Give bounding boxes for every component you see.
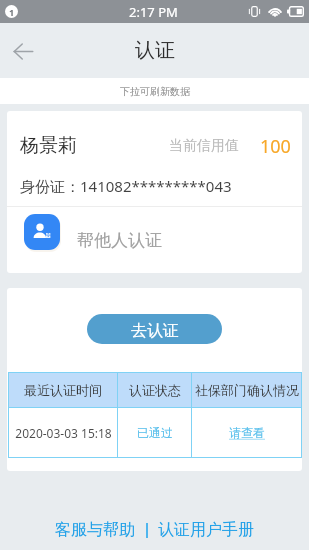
staticText: 身份证：141082*********043 <box>20 176 232 196</box>
button[interactable]: 去认证 <box>87 314 222 344</box>
staticText: 已通过 <box>137 425 173 440</box>
staticText: 2020-03-03 15:18 <box>15 425 112 441</box>
staticText: 请查看 <box>229 425 265 440</box>
staticText: 最近认证时间 <box>24 382 102 398</box>
staticText: 100 <box>260 134 291 159</box>
staticText: 社保部门确认情况 <box>195 382 299 398</box>
staticText: 当前信用值 <box>169 137 239 155</box>
button[interactable]: 帮他人认证 <box>7 207 302 273</box>
button[interactable]: Back <box>0 28 46 74</box>
button[interactable]: 客服与帮助 <box>55 520 135 540</box>
staticText: 杨景莉 <box>20 134 77 158</box>
staticText: 2:17 PM <box>129 3 178 21</box>
staticText: 帮他人认证 <box>77 230 162 251</box>
staticText: 去认证 <box>131 321 179 341</box>
staticText: 1 <box>9 6 15 18</box>
staticText: 下拉可刷新数据 <box>120 85 190 98</box>
staticText: 认证 <box>135 38 175 63</box>
button[interactable]: 认证用户手册 <box>158 520 254 540</box>
staticText: 认证状态 <box>129 382 181 398</box>
